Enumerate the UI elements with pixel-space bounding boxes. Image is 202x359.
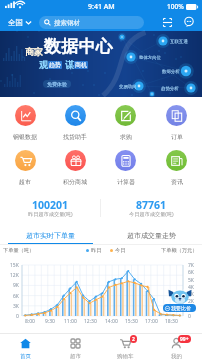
staticText: 昨日超市成交量(吨) <box>28 210 73 217</box>
staticText: 超市 <box>19 178 31 186</box>
staticText: 5K <box>188 277 194 284</box>
staticText: 8:00 <box>25 318 35 325</box>
staticText: 2 <box>132 336 135 343</box>
staticText: 我要比价 <box>171 305 191 311</box>
staticText: 12:30 <box>84 318 97 325</box>
staticText: 17:00 <box>145 318 158 325</box>
staticText: 今日超市成交量(吨) <box>129 210 174 217</box>
staticText: 今日 <box>115 247 126 254</box>
staticText: 购物车 <box>117 353 134 359</box>
staticText: 交易动向 <box>119 84 137 90</box>
staticText: 免费体验 <box>47 81 67 87</box>
button[interactable]: Messages <box>181 14 197 30</box>
staticText: 下单额（万元） <box>161 247 198 254</box>
staticText: 2K <box>188 298 194 305</box>
staticText: 0 <box>188 313 191 320</box>
staticText: 搜索钢材 <box>54 19 80 27</box>
button[interactable]: 超市 <box>50 334 100 359</box>
button[interactable]: 资讯 <box>151 148 202 193</box>
button[interactable]: 我要比价 <box>163 304 196 312</box>
button[interactable]: 全国 <box>8 18 32 27</box>
button[interactable]: 100201 <box>0 196 100 219</box>
button[interactable]: 求购 <box>100 103 151 148</box>
staticText: 首页 <box>20 353 31 359</box>
button[interactable]: 订单 <box>151 103 202 148</box>
staticText: 15K <box>10 262 19 269</box>
staticText: 11:00 <box>64 318 77 325</box>
staticText: 9:30 <box>45 318 55 325</box>
staticText: 9K <box>13 282 19 289</box>
staticText: 15:30 <box>125 318 138 325</box>
staticText: 100201 <box>32 198 69 212</box>
staticText: 4K <box>188 284 194 291</box>
staticText: 超市成交量走势 <box>127 231 176 240</box>
button[interactable]: 超市实时下单量 <box>0 222 101 244</box>
staticText: 互联互通 <box>170 39 188 45</box>
button[interactable]: 超市成交量走势 <box>101 222 202 244</box>
staticText: 1K <box>188 306 194 313</box>
staticText: 超市 <box>70 353 81 359</box>
staticText: 超市实时下单量 <box>26 231 75 240</box>
staticText: 观 <box>39 59 48 70</box>
staticText: 谋 <box>65 59 74 70</box>
staticText: 商机 <box>75 61 87 69</box>
staticText: 99+ <box>180 336 189 343</box>
staticText: 昨日 <box>91 247 102 254</box>
staticText: 6K <box>188 269 194 276</box>
button[interactable]: 找货助手 <box>50 103 100 148</box>
staticText: 9:41 AM <box>88 2 115 12</box>
staticText: 0 <box>16 313 19 320</box>
staticText: 3K <box>13 303 19 310</box>
button[interactable]: Scan <box>159 14 175 30</box>
button[interactable]: 99+ <box>151 334 202 359</box>
button[interactable]: 首页 <box>0 334 50 359</box>
button[interactable]: 87761 <box>101 196 202 219</box>
button[interactable]: 商家 <box>0 31 202 97</box>
button[interactable]: 搜索钢材 <box>39 16 144 29</box>
staticText: 趋势 <box>49 61 61 69</box>
staticText: 找货助手 <box>63 133 87 141</box>
button[interactable]: 2 <box>100 334 151 359</box>
staticText: 积分商城 <box>63 178 87 186</box>
staticText: 18:30 <box>165 318 178 325</box>
staticText: 数据中心 <box>44 36 113 57</box>
staticText: 12K <box>10 272 19 279</box>
staticText: 100% <box>167 2 184 11</box>
staticText: 整体方向位 <box>139 55 161 61</box>
staticText: 14:00 <box>105 318 118 325</box>
staticText: 数据分析 <box>162 69 180 75</box>
staticText: 求购 <box>120 133 132 141</box>
staticText: 全国 <box>8 18 23 27</box>
staticText: 订单 <box>171 133 183 141</box>
button[interactable]: 钢银数据 <box>0 103 50 148</box>
button[interactable]: 计算器 <box>100 148 151 193</box>
staticText: 6K <box>13 293 19 300</box>
staticText: 趋势分析 <box>161 86 179 92</box>
button[interactable]: 超市 <box>0 148 50 193</box>
staticText: 商家 <box>25 46 43 57</box>
staticText: 计算器 <box>117 178 135 186</box>
staticText: 87761 <box>136 198 167 212</box>
staticText: 钢银数据 <box>13 133 37 141</box>
staticText: 7K <box>188 262 194 269</box>
staticText: 3K <box>188 291 194 298</box>
staticText: 我的 <box>171 353 182 359</box>
button[interactable]: 积分商城 <box>50 148 100 193</box>
staticText: 下单量（吨） <box>3 247 35 254</box>
staticText: 资讯 <box>171 178 183 186</box>
